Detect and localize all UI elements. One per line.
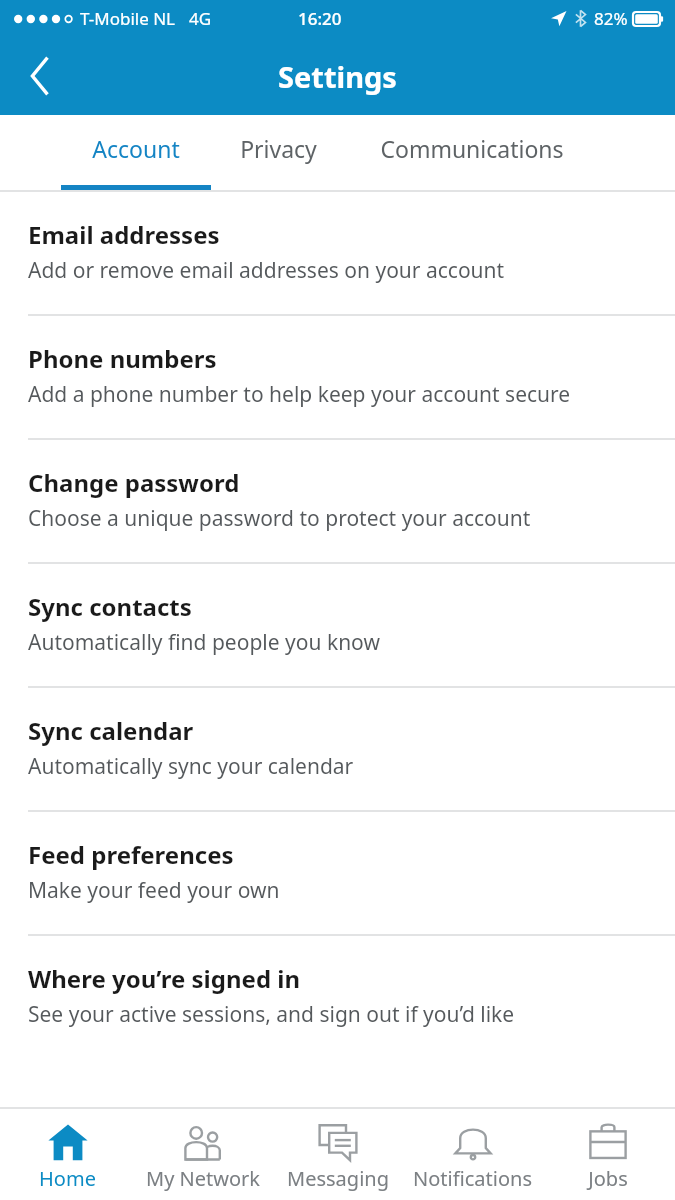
staticText: Home <box>39 1165 96 1192</box>
staticText: Where you’re signed in <box>28 962 301 995</box>
button[interactable]: Phone numbers <box>0 316 675 440</box>
staticText: Choose a unique password to protect your… <box>28 504 531 533</box>
button[interactable]: Feed preferences <box>0 812 675 936</box>
button[interactable]: Sync calendar <box>0 688 675 812</box>
button[interactable]: Home <box>0 1109 135 1200</box>
staticText: Settings <box>278 57 397 96</box>
staticText: Sync contacts <box>28 590 192 623</box>
staticText: Jobs <box>588 1165 628 1192</box>
staticText: Account <box>92 133 180 164</box>
staticText: Feed preferences <box>28 838 234 871</box>
button[interactable]: Account <box>61 115 211 192</box>
staticText: Notifications <box>413 1165 532 1192</box>
button[interactable]: Email addresses <box>0 192 675 316</box>
staticText: Change password <box>28 466 240 499</box>
button[interactable]: Where you’re signed in <box>0 936 675 1058</box>
button[interactable]: Jobs <box>540 1109 675 1200</box>
staticText: Privacy <box>240 133 317 164</box>
staticText: See your active sessions, and sign out i… <box>28 1000 515 1029</box>
staticText: Add or remove email addresses on your ac… <box>28 256 505 285</box>
staticText: Automatically find people you know <box>28 628 380 657</box>
staticText: Email addresses <box>28 218 220 251</box>
staticText: T-Mobile NL <box>80 7 176 30</box>
button[interactable]: Privacy <box>211 115 345 192</box>
staticText: Add a phone number to help keep your acc… <box>28 380 571 409</box>
button[interactable]: Change password <box>0 440 675 564</box>
button[interactable]: Notifications <box>405 1109 540 1200</box>
staticText: Make your feed your own <box>28 876 280 905</box>
button[interactable]: Back <box>10 46 70 106</box>
staticText: Phone numbers <box>28 342 217 375</box>
button[interactable]: Messaging <box>270 1109 405 1200</box>
staticText: 82% <box>594 7 628 30</box>
staticText: Sync calendar <box>28 714 194 747</box>
staticText: 16:20 <box>298 7 342 30</box>
staticText: My Network <box>146 1165 260 1192</box>
staticText: 4G <box>189 7 212 30</box>
button[interactable]: Sync contacts <box>0 564 675 688</box>
staticText: Communications <box>380 133 564 164</box>
staticText: Messaging <box>287 1165 389 1192</box>
button[interactable]: My Network <box>135 1109 270 1200</box>
staticText: Automatically sync your calendar <box>28 752 354 781</box>
button[interactable]: Communications <box>345 115 599 192</box>
